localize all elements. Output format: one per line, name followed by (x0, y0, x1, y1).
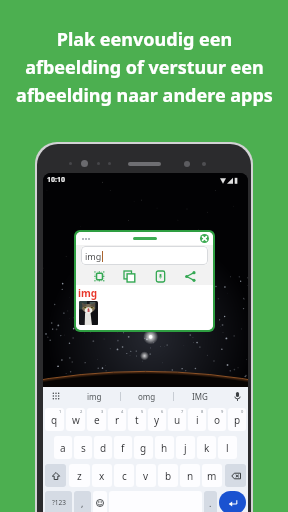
button[interactable]: j (176, 436, 195, 459)
button[interactable]: y (148, 408, 166, 431)
button[interactable]: s (74, 436, 92, 459)
staticText: i (196, 413, 199, 427)
staticText: img (78, 286, 98, 300)
button[interactable]: Select all (90, 267, 108, 285)
button[interactable]: Save (151, 267, 169, 285)
staticText: img (87, 391, 102, 402)
staticText: . (209, 497, 212, 509)
button[interactable]: Keyboard settings (43, 387, 69, 405)
button[interactable]: Copy (120, 267, 138, 285)
staticText: 10:10 (47, 175, 65, 185)
button[interactable]: img (81, 246, 208, 265)
staticText: 5 (141, 409, 144, 414)
staticText: img (85, 250, 102, 262)
staticText: 8 (201, 409, 204, 414)
button[interactable]: i (188, 408, 206, 431)
button[interactable]: f (114, 436, 132, 459)
button[interactable]: ?123 (45, 491, 72, 512)
button[interactable]: o (208, 408, 226, 431)
staticText: e (94, 413, 100, 427)
staticText: ?123 (52, 498, 66, 507)
button[interactable]: c (114, 464, 134, 487)
staticText: n (187, 469, 194, 483)
button[interactable]: Shift (45, 464, 66, 487)
staticText: b (165, 469, 172, 483)
staticText: d (100, 441, 107, 455)
staticText: 7 (181, 409, 184, 414)
button[interactable]: omg (121, 387, 173, 405)
staticText: y (154, 413, 160, 427)
button[interactable]: a (54, 436, 72, 459)
button[interactable]: Voice input (226, 387, 248, 405)
button[interactable]: h (155, 436, 174, 459)
staticText: 3 (101, 409, 104, 414)
button[interactable]: Share (181, 267, 199, 285)
staticText: t (135, 413, 139, 427)
staticText: Plak eenvoudig een afbeelding of verstuu… (16, 27, 273, 107)
button[interactable]: img (69, 387, 120, 405)
staticText: s (81, 441, 86, 455)
button[interactable]: . (204, 491, 217, 512)
button[interactable]: Close (198, 232, 211, 245)
staticText: 2 (80, 409, 83, 414)
button[interactable]: k (197, 436, 216, 459)
button[interactable]: t (128, 408, 146, 431)
staticText: g (140, 441, 147, 455)
button[interactable]: b (158, 464, 178, 487)
staticText: omg (138, 391, 156, 402)
button[interactable]: d (94, 436, 112, 459)
button[interactable]: e (87, 408, 106, 431)
button[interactable]: Backspace (225, 464, 246, 487)
button[interactable]: Enter (219, 491, 246, 512)
staticText: , (81, 497, 84, 509)
staticText: j (184, 441, 187, 455)
button[interactable]: Emoji (93, 491, 107, 512)
button[interactable] (80, 236, 93, 242)
staticText: 9 (221, 409, 224, 414)
button[interactable]: x (92, 464, 112, 487)
button[interactable]: r (108, 408, 126, 431)
staticText: k (204, 441, 210, 455)
staticText: 4 (121, 409, 124, 414)
button[interactable]: w (66, 408, 85, 431)
button[interactable]: p (228, 408, 246, 431)
button[interactable]: Image result (79, 301, 98, 325)
staticText: l (226, 441, 229, 455)
button[interactable]: v (136, 464, 156, 487)
staticText: z (77, 469, 82, 483)
button[interactable]: l (218, 436, 237, 459)
staticText: x (99, 469, 105, 483)
staticText: h (161, 441, 168, 455)
button[interactable]: n (180, 464, 200, 487)
staticText: u (174, 413, 181, 427)
staticText: o (214, 413, 221, 427)
button[interactable]: m (202, 464, 222, 487)
staticText: m (207, 469, 217, 483)
staticText: c (122, 469, 127, 483)
staticText: r (115, 413, 120, 427)
button[interactable]: , (74, 491, 91, 512)
staticText: p (234, 413, 241, 427)
button[interactable]: u (168, 408, 186, 431)
button[interactable]: IMG (174, 387, 226, 405)
staticText: q (51, 413, 58, 427)
staticText: 0 (241, 409, 244, 414)
staticText: 1 (59, 409, 62, 414)
button[interactable]: g (134, 436, 153, 459)
staticText: w (72, 413, 80, 427)
staticText: v (143, 469, 149, 483)
staticText: IMG (192, 391, 208, 402)
button[interactable]: z (69, 464, 90, 487)
staticText: f (121, 441, 125, 455)
staticText: 6 (161, 409, 164, 414)
button[interactable]: q (45, 408, 64, 431)
staticText: a (60, 441, 66, 455)
